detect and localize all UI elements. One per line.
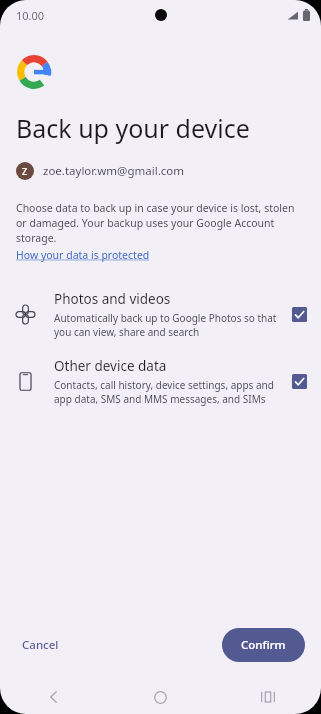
button[interactable]: Confirm [222, 628, 305, 662]
staticText: How your data is protected [16, 248, 150, 262]
staticText: 10.00 [16, 8, 45, 23]
button[interactable]: Other device data [0, 357, 321, 406]
staticText: Automatically back up to Google Photos s… [54, 311, 280, 339]
button[interactable]: Cancel [16, 629, 65, 661]
staticText: Contacts, call history, device settings,… [54, 378, 280, 406]
button[interactable]: Home [107, 680, 214, 714]
staticText: Confirm [241, 637, 286, 653]
staticText: Photos and videos [54, 290, 171, 308]
staticText: Cancel [22, 637, 59, 653]
button[interactable]: How your data is protected [16, 248, 150, 262]
button[interactable]: Z [0, 160, 321, 182]
staticText: zoe.taylor.wm@gmail.com [43, 163, 184, 179]
button[interactable]: Photos and videos checkbox, checked [292, 307, 307, 322]
staticText: Choose data to back up in case your devi… [16, 201, 307, 245]
button[interactable]: Back [0, 680, 107, 714]
staticText: Back up your device [16, 111, 250, 145]
staticText: Other device data [54, 357, 167, 375]
button[interactable]: Recent apps [214, 680, 321, 714]
button[interactable]: Other device data checkbox, checked [292, 374, 307, 389]
button[interactable]: Photos and videos [0, 290, 321, 339]
staticText: Z [22, 165, 28, 177]
